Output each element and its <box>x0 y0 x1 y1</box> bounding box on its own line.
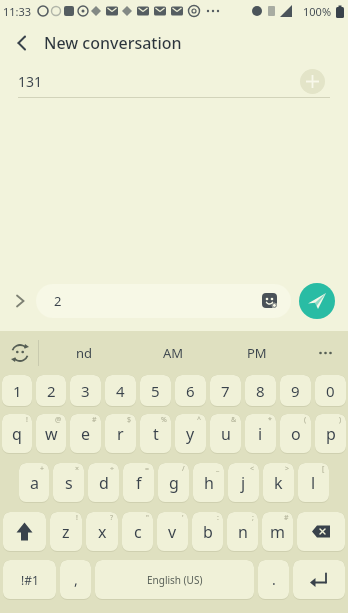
staticText: a <box>30 472 39 494</box>
button[interactable]: nd <box>44 331 124 375</box>
button[interactable]: t <box>140 414 171 454</box>
staticText: ÷ <box>110 464 115 474</box>
button[interactable]: 2 <box>36 284 291 318</box>
staticText: [ <box>322 464 325 474</box>
button[interactable]: 0 <box>315 375 346 407</box>
button[interactable]: n <box>227 512 258 552</box>
staticText: u <box>221 423 231 445</box>
staticText: 2 <box>54 292 62 310</box>
button[interactable]: h <box>193 463 224 503</box>
staticText: n <box>238 521 248 543</box>
button[interactable]: AM <box>133 331 213 375</box>
staticText: * <box>268 415 272 425</box>
staticText: # <box>284 513 289 523</box>
button[interactable]: w <box>36 414 66 454</box>
staticText: l <box>311 472 316 494</box>
button[interactable]: s <box>53 463 84 503</box>
button[interactable]: 3 <box>70 375 101 407</box>
staticText: w <box>45 423 58 445</box>
staticText: h <box>204 472 214 494</box>
button[interactable]: 2 <box>36 375 66 407</box>
staticText: 4 <box>116 381 125 401</box>
button[interactable]: 5 <box>140 375 171 407</box>
staticText: New conversation <box>44 32 182 54</box>
button[interactable]: b <box>192 512 223 552</box>
staticText: English (US) <box>147 573 203 587</box>
button[interactable]: , <box>60 560 91 600</box>
staticText: p <box>326 423 336 445</box>
button[interactable]: q <box>2 414 32 454</box>
staticText: nd <box>76 344 93 362</box>
staticText: s <box>65 472 73 494</box>
staticText: q <box>12 423 22 445</box>
button[interactable]: z <box>50 512 82 552</box>
staticText: 3 <box>81 381 90 401</box>
button[interactable]: v <box>157 512 188 552</box>
button[interactable] <box>10 291 30 311</box>
staticText: " <box>146 513 149 523</box>
button[interactable]: p <box>315 414 346 454</box>
button[interactable]: l <box>298 463 329 503</box>
staticText: PM <box>247 344 267 362</box>
staticText: ( <box>304 415 307 425</box>
staticText: i <box>258 423 263 445</box>
button[interactable] <box>318 345 334 361</box>
button[interactable]: i <box>245 414 276 454</box>
button[interactable]: PM <box>217 331 297 375</box>
button[interactable]: 9 <box>280 375 311 407</box>
button[interactable] <box>0 22 44 64</box>
staticText: / <box>182 464 185 474</box>
staticText: x <box>98 521 107 543</box>
staticText: 131 <box>18 72 43 91</box>
button[interactable]: c <box>122 512 153 552</box>
staticText: f <box>136 472 142 494</box>
staticText: $ <box>127 415 132 425</box>
button[interactable] <box>299 283 335 319</box>
button[interactable]: u <box>210 414 241 454</box>
staticText: ^ <box>197 415 202 425</box>
staticText: 5 <box>151 381 160 401</box>
staticText: b <box>203 521 213 543</box>
button[interactable]: x <box>86 512 118 552</box>
staticText: , <box>74 570 78 589</box>
button[interactable]: o <box>280 414 311 454</box>
staticText: 9 <box>291 381 300 401</box>
staticText: + <box>40 464 45 474</box>
button[interactable]: g <box>158 463 189 503</box>
button[interactable]: a <box>19 463 49 503</box>
staticText: 11:33 <box>3 4 32 19</box>
staticText: & <box>231 415 237 425</box>
button[interactable]: . <box>258 560 289 600</box>
button[interactable]: e <box>70 414 101 454</box>
button[interactable] <box>300 69 325 94</box>
staticText: @ <box>55 415 62 425</box>
staticText: o <box>291 423 301 445</box>
staticText: 1 <box>13 381 22 401</box>
button[interactable]: 8 <box>245 375 276 407</box>
button[interactable]: m <box>262 512 293 552</box>
button[interactable] <box>3 512 46 552</box>
button[interactable]: r <box>105 414 136 454</box>
button[interactable]: 6 <box>175 375 206 407</box>
button[interactable]: English (US) <box>95 560 254 600</box>
button[interactable]: 1 <box>2 375 32 407</box>
button[interactable]: !#1 <box>3 560 56 600</box>
button[interactable]: f <box>123 463 154 503</box>
staticText: ! <box>76 513 78 523</box>
staticText: ) <box>339 415 342 425</box>
staticText: > <box>285 464 290 474</box>
button[interactable]: y <box>175 414 206 454</box>
staticText: d <box>99 472 109 494</box>
button[interactable]: 4 <box>105 375 136 407</box>
button[interactable]: k <box>263 463 294 503</box>
button[interactable] <box>293 560 345 600</box>
staticText: !#1 <box>21 572 39 588</box>
staticText: % <box>161 415 167 425</box>
staticText: = <box>145 464 150 474</box>
button[interactable]: 7 <box>210 375 241 407</box>
button[interactable] <box>297 512 345 552</box>
staticText: r <box>117 423 124 445</box>
staticText: 2 <box>47 381 56 401</box>
button[interactable]: d <box>88 463 119 503</box>
button[interactable]: j <box>228 463 259 503</box>
